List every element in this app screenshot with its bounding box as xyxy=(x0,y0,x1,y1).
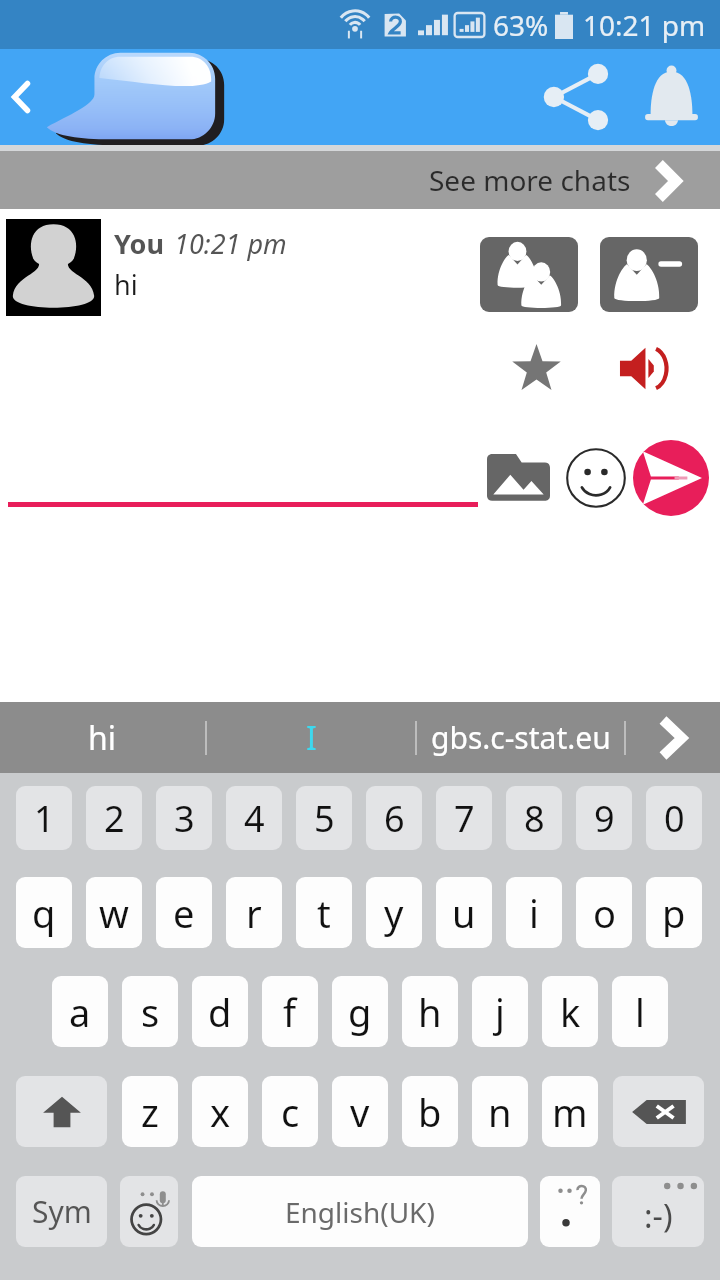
staticText: l xyxy=(635,986,645,1038)
staticText: See more chats xyxy=(429,161,631,199)
staticText: u xyxy=(452,887,476,939)
button[interactable]: 9 xyxy=(576,786,632,850)
button[interactable]: 8 xyxy=(506,786,562,850)
staticText: d xyxy=(208,986,232,1038)
staticText: 10:21 pm xyxy=(174,225,287,262)
button[interactable]: s xyxy=(122,976,178,1047)
button[interactable]: q xyxy=(16,877,72,948)
button[interactable]: 1 xyxy=(16,786,72,850)
staticText: :-) xyxy=(644,1194,673,1238)
staticText: z xyxy=(141,1086,159,1138)
button[interactable]: Emoji and voice input xyxy=(120,1176,178,1247)
staticText: 8 xyxy=(524,794,545,843)
button[interactable]: r xyxy=(226,877,282,948)
staticText: 7 xyxy=(454,794,475,843)
button[interactable]: Notifications xyxy=(628,59,714,135)
staticText: 1 xyxy=(34,794,55,843)
button[interactable]: x xyxy=(192,1076,248,1147)
button[interactable]: See more chats xyxy=(0,151,720,209)
button[interactable]: 3 xyxy=(156,786,212,850)
button[interactable]: e xyxy=(156,877,212,948)
button[interactable]: Share xyxy=(530,59,624,135)
button[interactable]: k xyxy=(542,976,598,1047)
button[interactable]: Emoticons xyxy=(612,1176,704,1247)
button[interactable]: Period xyxy=(540,1176,600,1247)
staticText: t xyxy=(317,887,331,939)
button[interactable]: j xyxy=(472,976,528,1047)
staticText: h xyxy=(418,986,442,1038)
button[interactable]: t xyxy=(296,877,352,948)
staticText: I xyxy=(306,716,317,760)
staticText: 10:21 pm xyxy=(583,6,706,44)
button[interactable]: o xyxy=(576,877,632,948)
button[interactable]: Send xyxy=(633,440,709,516)
staticText: Sym xyxy=(32,1191,92,1232)
staticText: hi xyxy=(114,266,138,303)
button[interactable]: hi xyxy=(0,702,205,773)
button[interactable]: v xyxy=(332,1076,388,1147)
staticText: y xyxy=(384,887,404,939)
staticText: 5 xyxy=(314,794,335,843)
staticText: n xyxy=(488,1086,512,1138)
staticText: i xyxy=(529,887,539,939)
staticText: g xyxy=(348,986,372,1038)
staticText: x xyxy=(210,1086,231,1138)
button[interactable]: c xyxy=(262,1076,318,1147)
button[interactable]: Emoji xyxy=(560,440,632,516)
staticText: e xyxy=(173,887,195,939)
staticText: v xyxy=(350,1086,370,1138)
staticText: q xyxy=(32,887,56,939)
button[interactable]: Favorite xyxy=(504,336,568,400)
button[interactable]: m xyxy=(542,1076,598,1147)
staticText: English(UK) xyxy=(285,1193,435,1231)
staticText: o xyxy=(593,887,616,939)
staticText: 9 xyxy=(594,794,615,843)
button[interactable]: h xyxy=(402,976,458,1047)
button[interactable]: 5 xyxy=(296,786,352,850)
button[interactable]: p xyxy=(646,877,702,948)
staticText: p xyxy=(662,887,686,939)
button[interactable]: 4 xyxy=(226,786,282,850)
staticText: m xyxy=(552,1086,588,1138)
staticText: 3 xyxy=(174,794,195,843)
button[interactable]: l xyxy=(612,976,668,1047)
button[interactable]: b xyxy=(402,1076,458,1147)
button[interactable]: 0 xyxy=(646,786,702,850)
button[interactable]: z xyxy=(122,1076,178,1147)
button[interactable]: d xyxy=(192,976,248,1047)
staticText: You xyxy=(114,225,164,262)
button[interactable]: i xyxy=(506,877,562,948)
button[interactable]: English(UK) xyxy=(192,1176,528,1247)
button[interactable]: f xyxy=(262,976,318,1047)
button[interactable]: More suggestions xyxy=(626,702,720,773)
button[interactable]: Sym xyxy=(16,1176,107,1247)
button[interactable]: Back xyxy=(0,71,46,123)
staticText: 0 xyxy=(664,794,685,843)
button[interactable]: w xyxy=(86,877,142,948)
button[interactable]: 6 xyxy=(366,786,422,850)
staticText: 4 xyxy=(244,794,265,843)
button[interactable]: Gallery xyxy=(477,440,560,516)
staticText: b xyxy=(418,1086,442,1138)
button[interactable]: a xyxy=(52,976,108,1047)
button[interactable]: I xyxy=(207,702,415,773)
staticText: w xyxy=(99,887,129,939)
button[interactable]: n xyxy=(472,1076,528,1147)
button[interactable]: 2 xyxy=(86,786,142,850)
staticText: s xyxy=(141,986,160,1038)
button[interactable]: Remove person xyxy=(600,237,698,312)
button[interactable]: Group members xyxy=(480,237,578,312)
staticText: c xyxy=(281,1086,300,1138)
button[interactable]: u xyxy=(436,877,492,948)
button[interactable]: Sound xyxy=(611,336,675,400)
button[interactable]: 7 xyxy=(436,786,492,850)
staticText: hi xyxy=(88,716,117,760)
staticText: r xyxy=(246,887,262,939)
staticText: k xyxy=(560,986,581,1038)
button[interactable]: Shift xyxy=(16,1076,107,1147)
button[interactable]: Backspace xyxy=(613,1076,704,1147)
button[interactable]: gbs.c-stat.eu xyxy=(417,702,624,773)
staticText: 63% xyxy=(493,6,549,44)
button[interactable]: y xyxy=(366,877,422,948)
button[interactable]: g xyxy=(332,976,388,1047)
